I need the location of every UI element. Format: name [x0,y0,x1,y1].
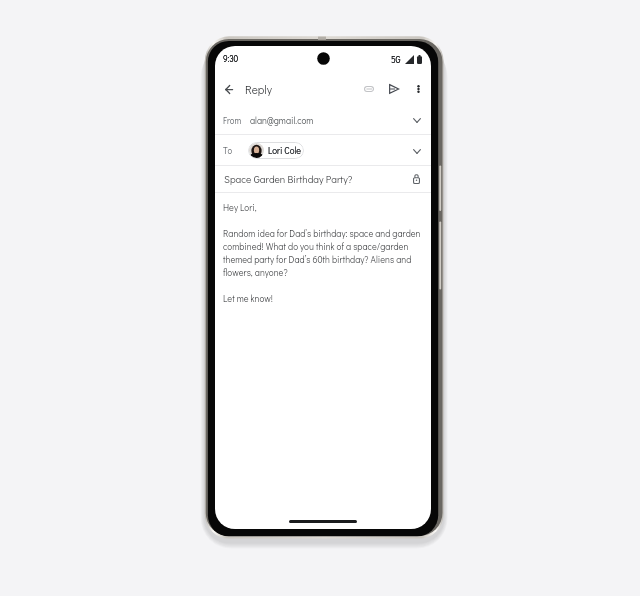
button[interactable]: Attach file [358,78,380,100]
staticText: From [223,114,242,127]
staticText: To [223,144,233,157]
staticText: Space Garden Birthday Party? [224,172,353,186]
staticText: 9:30 [223,52,238,64]
staticText: Lori Cole [268,144,301,157]
staticText: 5G [391,53,401,65]
staticText: 9:30 [223,52,238,64]
button[interactable]: Back [217,77,241,101]
button[interactable]: From [215,105,431,135]
staticText: Lori Cole [268,144,301,157]
staticText: Lori Cole [268,144,301,157]
button[interactable]: More options [407,78,429,100]
staticText: 9:30 [223,52,238,64]
staticText: alan@gmail.com [250,113,314,127]
button[interactable]: Send [383,78,405,100]
button[interactable]: Lori Cole [248,142,304,159]
staticText: 5G [391,53,401,65]
staticText: Hey Lori, Random idea for Dad’s birthday… [223,201,421,305]
button[interactable]: Space Garden Birthday Party? [215,165,431,193]
staticText: Reply [245,80,272,97]
button[interactable]: To [215,135,431,166]
staticText: 5G [391,53,401,65]
